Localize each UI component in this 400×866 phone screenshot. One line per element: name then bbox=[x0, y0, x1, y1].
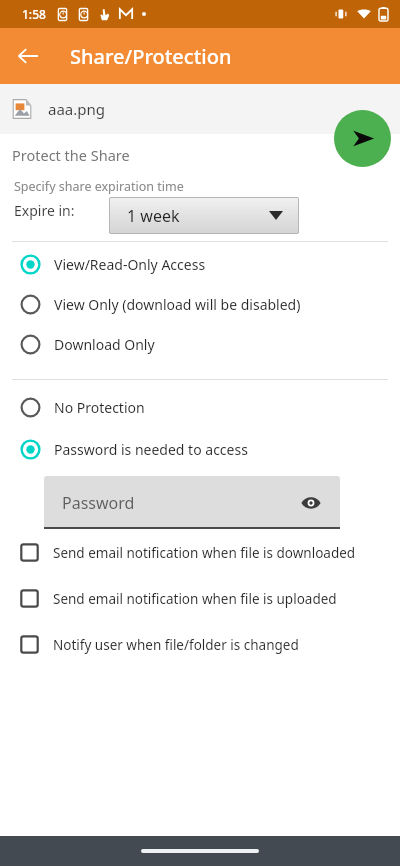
staticText: No Protection bbox=[54, 398, 145, 417]
button[interactable]: Show password bbox=[298, 490, 324, 516]
staticText: Protect the Share bbox=[12, 145, 130, 165]
button[interactable]: Send bbox=[334, 110, 391, 167]
staticText: Download Only bbox=[54, 335, 155, 354]
staticText: Notify user when file/folder is changed bbox=[53, 636, 299, 654]
button[interactable]: View/Read-Only Access bbox=[0, 252, 400, 277]
staticText: 1 week bbox=[127, 205, 180, 227]
staticText: Share/Protection bbox=[70, 43, 232, 70]
button[interactable]: Send email notification when file is upl… bbox=[0, 587, 400, 610]
button[interactable]: Password is needed to access bbox=[0, 437, 400, 462]
staticText: Specify share expiration time bbox=[14, 178, 184, 195]
button[interactable]: 1 week bbox=[109, 197, 299, 234]
button[interactable]: aaa.png bbox=[0, 84, 400, 134]
staticText: Send email notification when file is upl… bbox=[53, 590, 337, 608]
staticText: View Only (download will be disabled) bbox=[54, 295, 301, 314]
staticText: Password bbox=[62, 492, 135, 514]
staticText: Expire in: bbox=[14, 201, 75, 220]
staticText: View/Read-Only Access bbox=[54, 255, 206, 274]
staticText: aaa.png bbox=[48, 99, 105, 119]
button[interactable]: Download Only bbox=[0, 332, 400, 357]
button[interactable]: Notify user when file/folder is changed bbox=[0, 633, 400, 656]
staticText: 1:58 bbox=[22, 6, 46, 22]
button[interactable]: Send email notification when file is dow… bbox=[0, 541, 400, 564]
staticText: Password is needed to access bbox=[54, 440, 248, 459]
button[interactable]: Password bbox=[44, 476, 340, 529]
button[interactable]: View Only (download will be disabled) bbox=[0, 292, 400, 317]
button[interactable]: Back bbox=[8, 36, 48, 76]
staticText: Send email notification when file is dow… bbox=[53, 544, 356, 562]
button[interactable]: No Protection bbox=[0, 395, 400, 420]
